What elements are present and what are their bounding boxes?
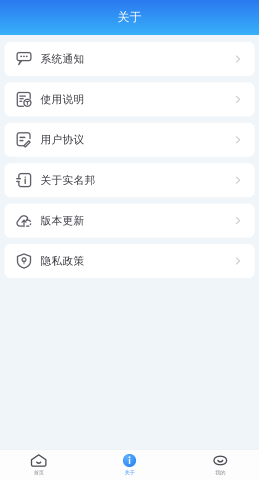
staticText: 我的 [215,469,225,476]
staticText: 使用说明 [40,93,84,106]
button[interactable]: 系统通知 [4,42,254,76]
button[interactable]: 我的 [197,449,243,480]
button[interactable]: 用户协议 [4,123,254,157]
staticText: 版本更新 [40,214,84,227]
staticText: 关于实名邦 [40,174,95,187]
button[interactable]: 版本更新 [4,204,254,238]
staticText: 系统通知 [40,52,84,65]
button[interactable]: 首页 [16,449,62,480]
staticText: 隐私政策 [40,254,84,267]
button[interactable]: 关于实名邦 [4,163,254,197]
button[interactable]: 关于 [106,449,152,480]
button[interactable]: 使用说明 [4,82,254,116]
staticText: 关于 [124,469,134,476]
staticText: 用户协议 [40,133,84,146]
staticText: 关于 [117,10,141,24]
button[interactable]: 隐私政策 [4,244,254,278]
staticText: 首页 [34,469,44,476]
